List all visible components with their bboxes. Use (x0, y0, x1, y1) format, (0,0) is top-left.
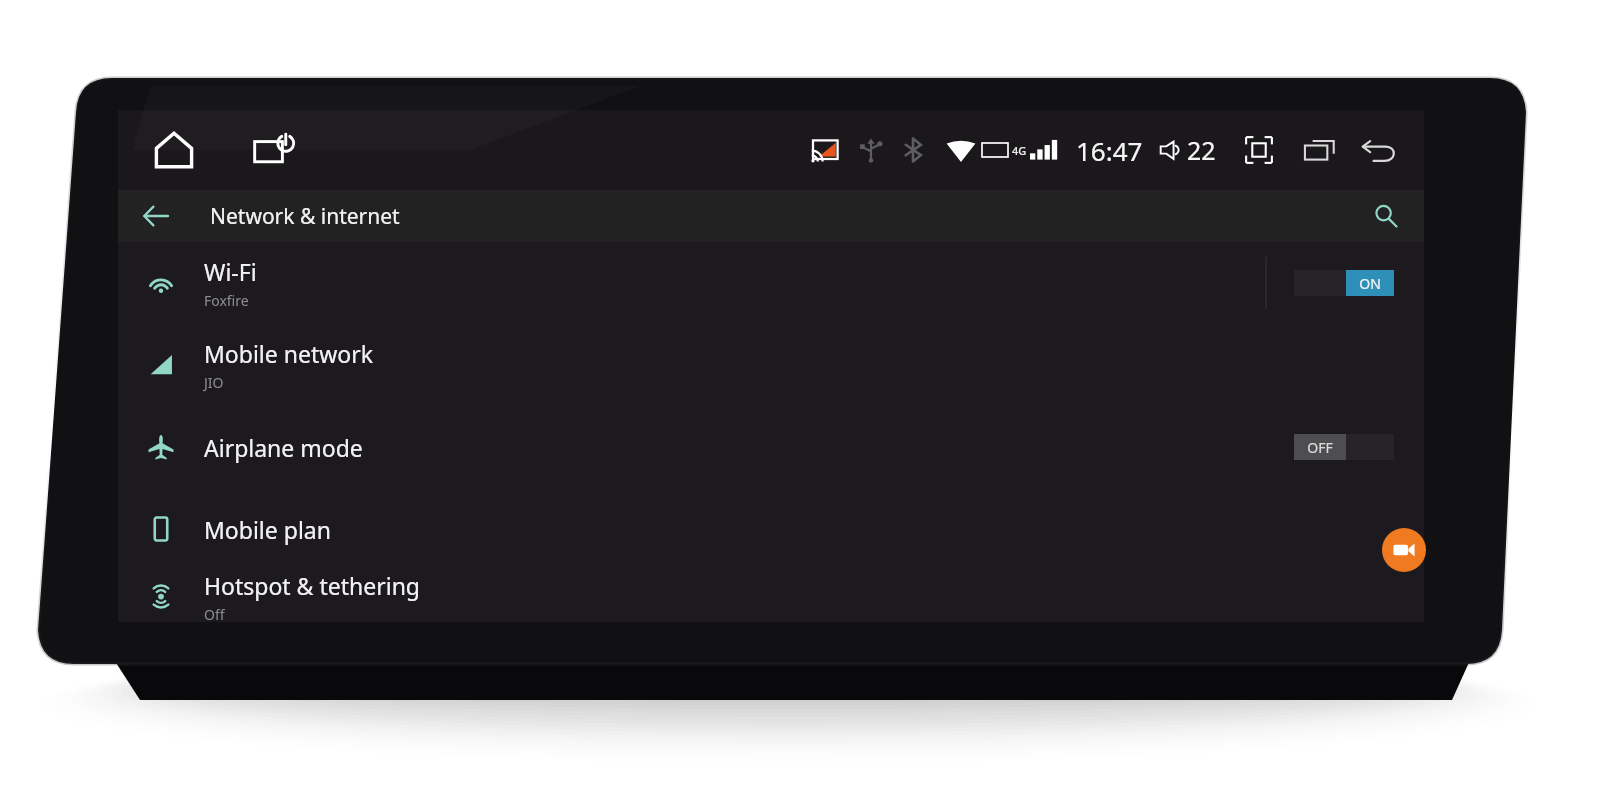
button[interactable]: Mobile plan (118, 488, 1424, 570)
staticText: 4G (1012, 143, 1027, 158)
staticText: JIO (204, 373, 224, 392)
button[interactable]: Hotspot & tethering (118, 570, 1424, 622)
button[interactable]: Search (1364, 194, 1408, 238)
button[interactable]: Volume 22 (1159, 133, 1216, 167)
staticText: 22 (1187, 133, 1216, 167)
button[interactable]: Switch off (1294, 434, 1394, 460)
button[interactable]: Switch on (1294, 270, 1394, 296)
button[interactable]: Mobile network (118, 324, 1424, 406)
staticText: 16:47 (1076, 133, 1143, 168)
staticText: ON (1359, 274, 1381, 293)
staticText: Hotspot & tethering (204, 570, 420, 601)
button[interactable]: Navigate up (134, 194, 178, 238)
staticText: OFF (1307, 438, 1333, 457)
staticText: Wi-Fi (204, 256, 257, 287)
staticText: Mobile network (204, 338, 374, 369)
button[interactable]: Airplane mode (118, 406, 1424, 488)
button[interactable]: Home (146, 122, 202, 178)
button[interactable]: Back (1356, 127, 1402, 173)
button[interactable]: Wi-Fi (118, 242, 1424, 324)
staticText: Off (204, 605, 225, 622)
button[interactable]: Screenshot (1236, 127, 1282, 173)
staticText: Foxfire (204, 291, 249, 310)
staticText: Network & internet (210, 202, 400, 231)
staticText: Mobile plan (204, 514, 331, 545)
staticText: Airplane mode (204, 432, 363, 463)
button[interactable]: Display power (246, 122, 302, 178)
button[interactable]: Record video (1382, 528, 1426, 572)
button[interactable]: Recent apps (1296, 127, 1342, 173)
